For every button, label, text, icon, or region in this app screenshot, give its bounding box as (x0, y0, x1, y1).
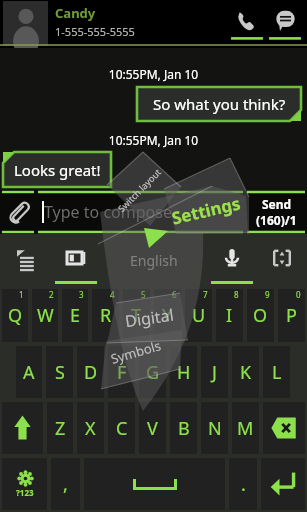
button[interactable]: Call (228, 1, 266, 45)
button[interactable]: C (108, 402, 135, 454)
staticText: 7 (203, 289, 208, 300)
staticText: ?123 (16, 487, 34, 498)
staticText: 6 (172, 289, 177, 300)
staticText: 9 (265, 289, 270, 300)
button[interactable]: J (201, 346, 228, 398)
button[interactable]: H (170, 346, 197, 398)
staticText: P (286, 303, 297, 328)
staticText: Type to compose (44, 201, 172, 223)
staticText: Send (262, 196, 292, 212)
staticText: English (130, 251, 178, 270)
button[interactable]: Backspace (263, 402, 305, 454)
staticText: U (192, 303, 206, 328)
staticText: 8 (234, 289, 239, 300)
button[interactable]: E (62, 289, 88, 342)
staticText: 3 (79, 289, 84, 300)
button[interactable]: M (232, 402, 259, 454)
button[interactable]: Enter (261, 458, 305, 510)
staticText: E (70, 303, 81, 328)
button[interactable]: Shift (2, 402, 43, 454)
staticText: . (241, 472, 246, 497)
staticText: Candy (55, 4, 96, 22)
staticText: L (272, 360, 282, 385)
staticText: 4 (110, 289, 115, 300)
staticText: 0 (296, 289, 301, 300)
button[interactable]: D (77, 346, 104, 398)
button[interactable]: N (201, 402, 228, 454)
staticText: B (178, 416, 190, 441)
button[interactable]: R (92, 289, 119, 342)
staticText: A (23, 360, 35, 385)
staticText: W (37, 303, 54, 328)
button[interactable]: U (185, 289, 212, 342)
staticText: F (117, 360, 127, 385)
staticText: So what you think? (153, 94, 286, 114)
staticText: Switch layout (115, 165, 164, 214)
staticText: Settings (169, 191, 243, 230)
button[interactable]: Messages (266, 1, 304, 45)
button[interactable]: Switch layout (81, 132, 197, 248)
button[interactable]: Contact photo (3, 1, 48, 46)
button[interactable]: L (263, 346, 290, 398)
button[interactable]: Settings (139, 179, 273, 241)
staticText: Symbols (108, 336, 163, 368)
staticText: T (131, 303, 142, 328)
button[interactable]: Symbols (2, 458, 47, 510)
button[interactable]: Q (2, 289, 28, 342)
button[interactable]: Digital (82, 292, 216, 344)
button[interactable]: P (278, 289, 305, 342)
button[interactable]: Looks great! (3, 152, 111, 187)
button[interactable]: Symbols (69, 318, 203, 386)
staticText: Z (55, 416, 66, 441)
staticText: X (85, 416, 96, 441)
button[interactable]: K (232, 346, 259, 398)
staticText: 5 (141, 289, 146, 300)
staticText: 10:55PM, Jan 10 (0, 66, 307, 82)
button[interactable]: Attach (0, 190, 36, 234)
button[interactable]: Keyboard layout (51, 234, 101, 287)
button[interactable]: Y (154, 289, 181, 342)
staticText: C (116, 416, 128, 441)
button[interactable]: G (139, 346, 166, 398)
button[interactable]: , (51, 458, 80, 510)
button[interactable]: Type to compose (36, 190, 245, 234)
button[interactable]: W (32, 289, 58, 342)
button[interactable]: S (46, 346, 73, 398)
staticText: H (177, 360, 191, 385)
button[interactable]: X (77, 402, 104, 454)
button[interactable]: Space (84, 458, 225, 510)
staticText: , (63, 472, 68, 497)
staticText: 2 (49, 289, 54, 300)
button[interactable]: T (123, 289, 150, 342)
staticText: V (147, 416, 158, 441)
button[interactable]: V (139, 402, 166, 454)
button[interactable]: O (247, 289, 274, 342)
button[interactable]: Z (47, 402, 73, 454)
staticText: N (208, 416, 222, 441)
button[interactable]: Resize keyboard (257, 234, 307, 287)
staticText: Digital (124, 304, 175, 332)
button[interactable]: Send (245, 190, 307, 234)
button[interactable]: Voice input (207, 234, 257, 287)
button[interactable]: I (216, 289, 243, 342)
staticText: K (240, 360, 252, 385)
staticText: (160)/1 (256, 212, 297, 228)
button[interactable]: So what you think? (137, 87, 301, 121)
button[interactable]: . (229, 458, 257, 510)
staticText: D (84, 360, 98, 385)
button[interactable]: A (16, 346, 42, 398)
staticText: J (212, 360, 217, 385)
staticText: 10:55PM, Jan 10 (0, 132, 307, 148)
staticText: M (237, 416, 254, 441)
staticText: S (55, 360, 65, 385)
button[interactable]: Layout (0, 234, 51, 287)
staticText: R (100, 303, 112, 328)
staticText: O (253, 303, 268, 328)
staticText: Q (8, 303, 23, 328)
button[interactable]: B (170, 402, 197, 454)
staticText: Y (162, 303, 173, 328)
staticText: I (226, 303, 233, 328)
staticText: 1-555-555-5555 (55, 24, 135, 39)
button[interactable]: F (108, 346, 135, 398)
staticText: G (146, 360, 160, 385)
